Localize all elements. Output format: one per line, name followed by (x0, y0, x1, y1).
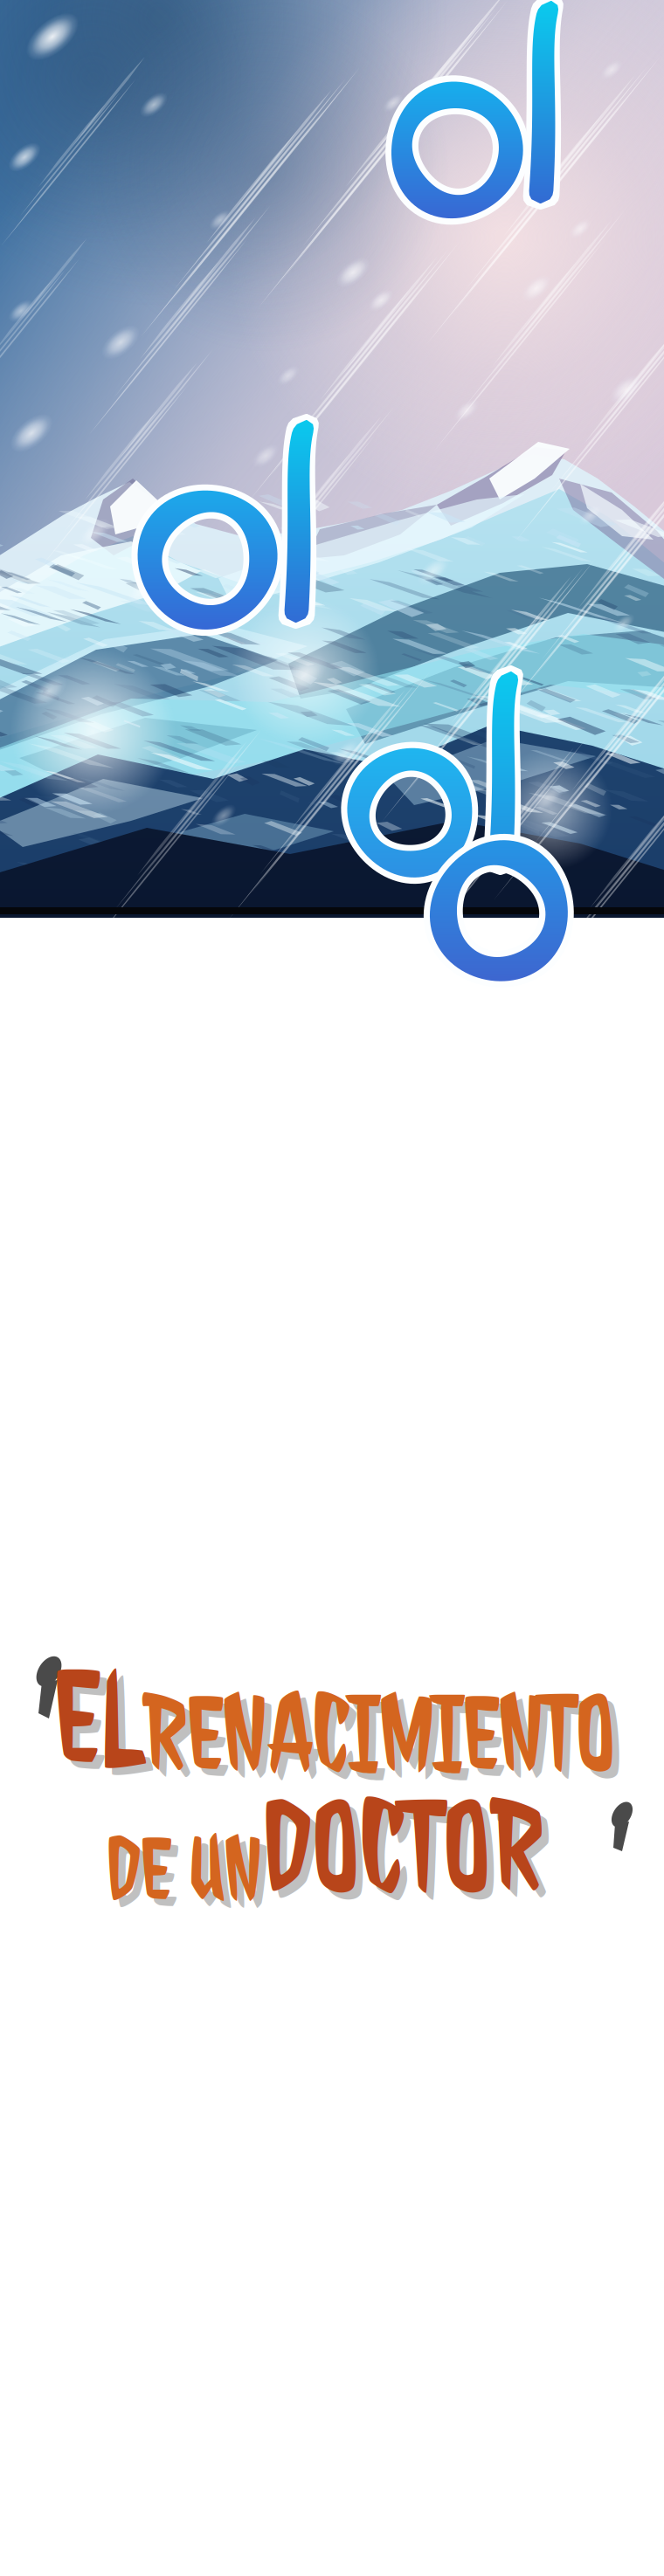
staticText: DE UN (107, 1814, 261, 1922)
staticText: RENACIMIENTO (143, 1669, 615, 1796)
staticText: EL (61, 1642, 149, 1803)
staticText: RENACIMIENTO (150, 1676, 622, 1803)
staticText: EL (54, 1635, 142, 1796)
staticText: DOCTOR (270, 1776, 550, 1929)
staticText: DE UN (114, 1821, 268, 1929)
staticText: DOCTOR (263, 1769, 543, 1922)
